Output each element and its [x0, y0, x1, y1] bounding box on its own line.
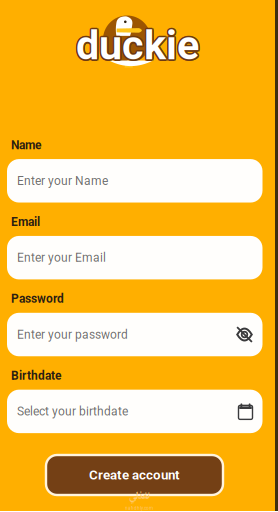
- staticText: Email: [11, 215, 40, 229]
- staticText: Enter your Name: [17, 174, 108, 188]
- staticText: duckie: [77, 22, 200, 71]
- button[interactable]: Enter your Name: [7, 159, 262, 203]
- staticText: duckie: [75, 20, 198, 68]
- button[interactable]: Enter your Email: [7, 236, 262, 279]
- staticText: Create account: [89, 467, 180, 483]
- staticText: duckie: [78, 21, 201, 69]
- staticText: Password: [11, 292, 64, 306]
- button[interactable]: Enter your password: [7, 313, 262, 356]
- staticText: Enter your password: [17, 327, 128, 342]
- staticText: duckie: [77, 20, 200, 68]
- staticText: Birthdate: [11, 369, 61, 383]
- staticText: nafidhly.com: [125, 505, 153, 511]
- staticText: Name: [11, 138, 41, 152]
- staticText: duckie: [76, 23, 199, 71]
- button[interactable]: Create account: [46, 455, 223, 495]
- staticText: duckie: [74, 21, 197, 69]
- staticText: duckie: [75, 22, 198, 71]
- button[interactable]: Select your birthdate: [7, 390, 262, 433]
- staticText: Enter your Email: [17, 251, 106, 265]
- staticText: duckie: [76, 19, 199, 68]
- staticText: نفذلي: [128, 487, 149, 506]
- staticText: duckie: [76, 21, 199, 69]
- staticText: Select your birthdate: [17, 404, 128, 418]
